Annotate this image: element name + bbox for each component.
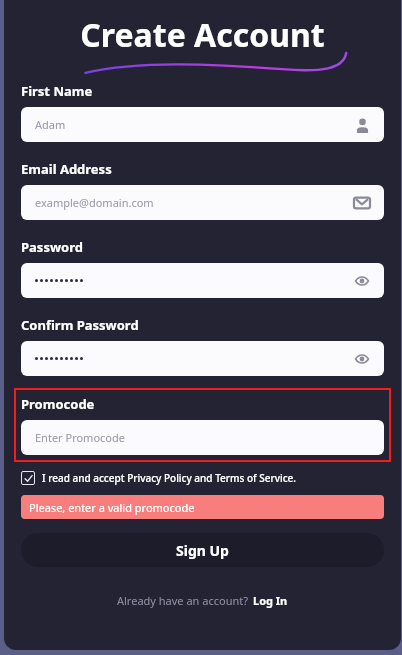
button[interactable]: Log In: [253, 593, 288, 608]
staticText: Please, enter a valid promocode: [29, 500, 195, 515]
button[interactable]: example@domain.com: [21, 185, 384, 220]
button[interactable]: Adam: [21, 107, 384, 142]
button[interactable]: Show password: [353, 272, 371, 290]
staticText: Confirm Password: [21, 316, 139, 334]
button[interactable]: Email: [353, 194, 371, 212]
button[interactable]: I read and accept Privacy Policy and Ter…: [21, 471, 297, 485]
staticText: example@domain.com: [35, 195, 154, 210]
staticText: I read and accept Privacy Policy and Ter…: [42, 471, 297, 485]
button[interactable]: Show confirm password: [21, 341, 384, 376]
staticText: Email Address: [21, 160, 112, 178]
staticText: Enter Promocode: [35, 430, 125, 445]
button[interactable]: Sign Up: [21, 533, 384, 567]
staticText: Adam: [35, 117, 66, 132]
staticText: Sign Up: [176, 541, 229, 560]
staticText: Log In: [253, 593, 288, 608]
staticText: Already have an account?: [117, 593, 248, 608]
button[interactable]: Enter Promocode: [21, 420, 384, 455]
button[interactable]: Show password: [21, 263, 384, 298]
staticText: Password: [21, 238, 83, 256]
staticText: Create Account: [80, 13, 325, 57]
staticText: First Name: [21, 82, 93, 100]
staticText: Promocode: [21, 395, 95, 413]
button[interactable]: Show confirm password: [353, 350, 371, 368]
button[interactable]: Profile: [353, 116, 371, 134]
